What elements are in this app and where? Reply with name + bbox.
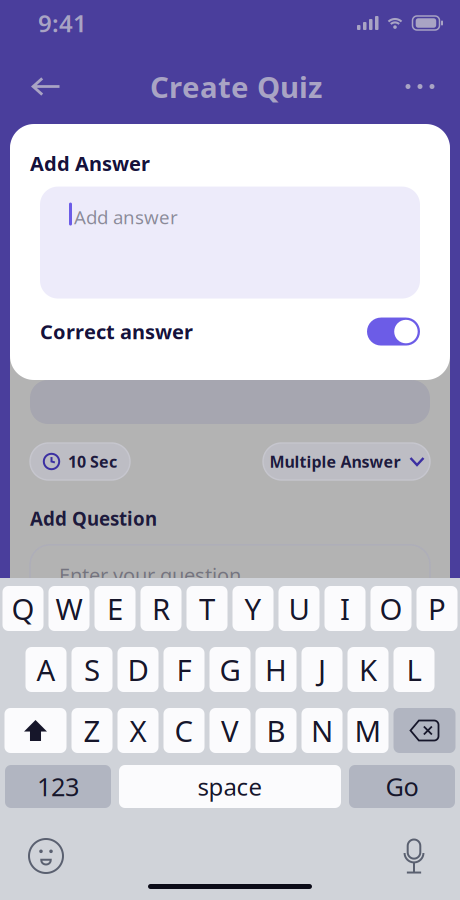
staticText: H <box>265 650 287 689</box>
button[interactable]: O <box>370 586 411 631</box>
staticText: Correct answer <box>40 318 193 345</box>
staticText: 123 <box>37 770 79 803</box>
button[interactable]: Y <box>232 586 273 631</box>
button[interactable]: J <box>301 647 342 692</box>
staticText: X <box>129 711 146 750</box>
staticText: Enter your question <box>59 562 241 588</box>
staticText: Create Quiz <box>150 67 322 106</box>
button[interactable]: T <box>186 586 227 631</box>
staticText: Multiple Answer <box>269 451 400 472</box>
button[interactable]: S <box>71 647 112 692</box>
button[interactable]: 123 <box>5 765 111 808</box>
staticText: Z <box>83 711 100 750</box>
staticText: C <box>174 711 193 750</box>
staticText: J <box>318 650 326 689</box>
staticText: N <box>311 711 333 750</box>
button[interactable]: Q <box>2 586 43 631</box>
button[interactable]: P <box>416 586 457 631</box>
button[interactable]: K <box>347 647 388 692</box>
button[interactable]: Delete <box>393 708 455 753</box>
staticText: A <box>36 650 55 689</box>
button[interactable]: G <box>209 647 250 692</box>
button[interactable]: Multiple Answer <box>263 443 430 480</box>
button[interactable]: U <box>278 586 319 631</box>
staticText: S <box>84 650 100 689</box>
button[interactable]: Back <box>14 62 78 110</box>
staticText: Y <box>244 589 261 628</box>
staticText: Add Answer <box>30 150 150 177</box>
button[interactable]: X <box>117 708 158 753</box>
button[interactable]: H <box>255 647 296 692</box>
button[interactable]: F <box>163 647 204 692</box>
button[interactable]: 10 Sec <box>30 443 130 480</box>
staticText: space <box>197 771 262 802</box>
button[interactable]: N <box>301 708 342 753</box>
button[interactable]: L <box>393 647 434 692</box>
button[interactable]: C <box>163 708 204 753</box>
staticText: B <box>266 711 285 750</box>
staticText: R <box>152 589 170 628</box>
staticText: E <box>107 589 123 628</box>
staticText: U <box>288 589 309 628</box>
staticText: Add Question <box>30 506 157 531</box>
staticText: V <box>221 711 239 750</box>
staticText: F <box>176 650 191 689</box>
staticText: 9:41 <box>38 7 87 39</box>
staticText: Add answer <box>74 205 178 229</box>
button[interactable]: Dictate <box>382 830 446 882</box>
staticText: D <box>127 650 148 689</box>
staticText: O <box>379 589 402 628</box>
staticText: M <box>354 711 381 750</box>
staticText: L <box>406 650 421 689</box>
button[interactable]: W <box>48 586 89 631</box>
staticText: 10 Sec <box>68 451 117 472</box>
button[interactable]: space <box>119 765 341 808</box>
staticText: W <box>55 589 82 628</box>
staticText: G <box>219 650 240 689</box>
staticText: I <box>340 589 350 628</box>
staticText: Go <box>385 770 418 803</box>
button[interactable]: Shift <box>4 708 66 753</box>
button[interactable]: Z <box>71 708 112 753</box>
button[interactable]: Correct answer <box>367 318 420 346</box>
button[interactable]: B <box>255 708 296 753</box>
button[interactable]: Go <box>349 765 455 808</box>
staticText: K <box>359 650 377 689</box>
staticText: Q <box>11 589 34 628</box>
button[interactable]: V <box>209 708 250 753</box>
button[interactable]: R <box>140 586 181 631</box>
staticText: P <box>428 589 446 628</box>
button[interactable]: E <box>94 586 135 631</box>
button[interactable]: M <box>347 708 388 753</box>
button[interactable]: Emoji keyboard <box>14 830 78 882</box>
button[interactable]: D <box>117 647 158 692</box>
button[interactable]: More options <box>394 62 446 110</box>
button[interactable]: I <box>324 586 365 631</box>
button[interactable]: A <box>25 647 66 692</box>
staticText: T <box>199 589 215 628</box>
